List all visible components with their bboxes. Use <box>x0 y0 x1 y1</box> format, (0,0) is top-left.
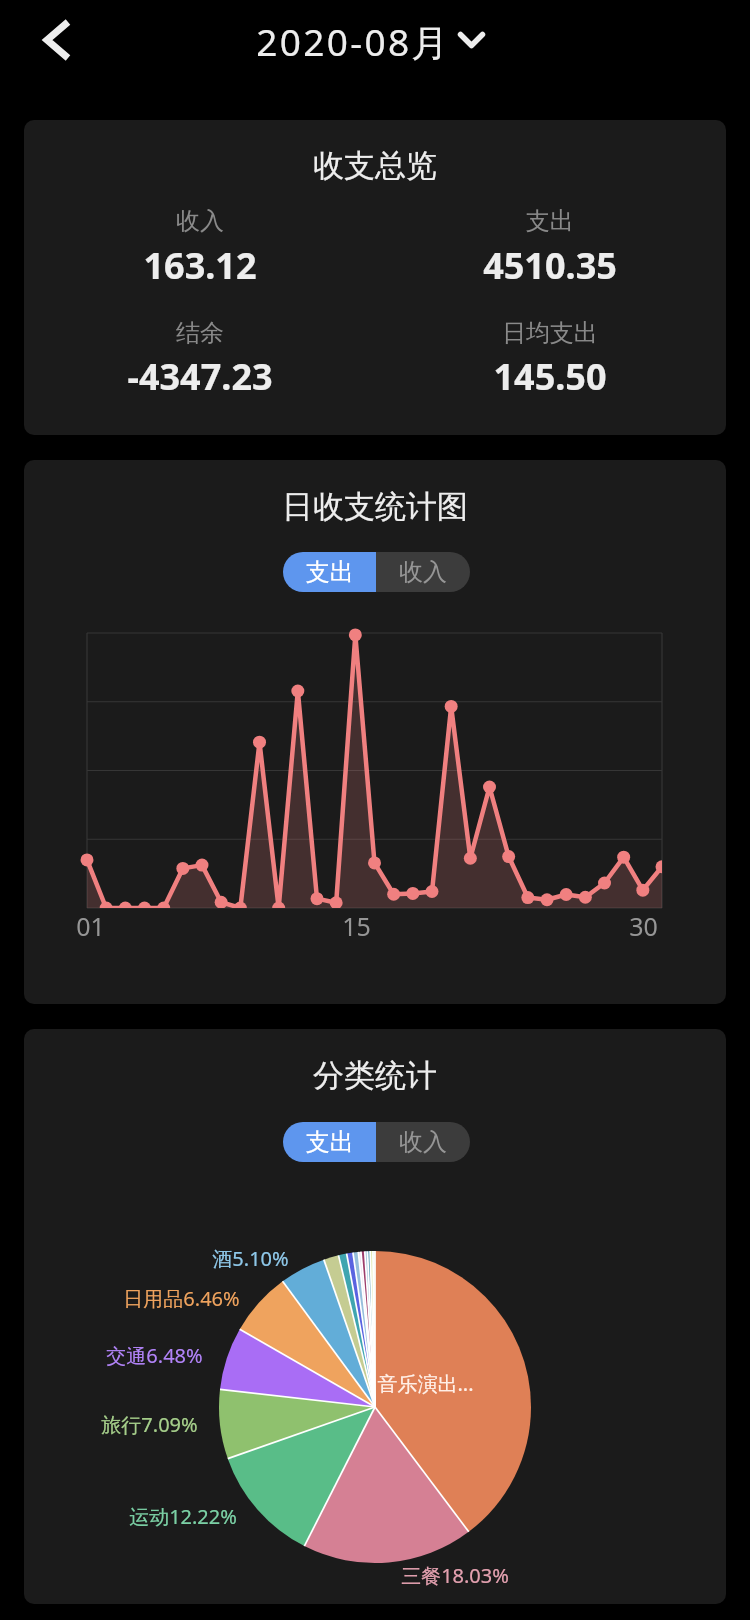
button[interactable]: 收入 <box>376 1122 470 1162</box>
staticText: 163.12 <box>143 241 257 290</box>
staticText: 支出 <box>306 1127 354 1157</box>
staticText: 收入 <box>399 1127 447 1157</box>
staticText: -4347.23 <box>127 352 273 401</box>
staticText: 4510.35 <box>483 241 617 290</box>
staticText: 145.50 <box>493 352 607 401</box>
staticText: 2020-08月 <box>256 16 451 67</box>
button[interactable]: 支出 <box>283 1122 376 1162</box>
staticText: 三餐18.03% <box>401 1562 509 1589</box>
staticText: 01 <box>76 909 105 943</box>
button[interactable]: Back <box>29 12 85 68</box>
staticText: 音乐演出... <box>377 1370 474 1397</box>
staticText: 日收支统计图 <box>282 487 468 526</box>
button[interactable]: 收支总览 <box>24 120 726 435</box>
staticText: 收支总览 <box>313 146 437 185</box>
staticText: 支出 <box>526 206 574 236</box>
staticText: 15 <box>342 909 371 943</box>
staticText: 30 <box>629 909 658 943</box>
staticText: 日用品6.46% <box>123 1285 240 1312</box>
staticText: 运动12.22% <box>129 1503 237 1530</box>
staticText: 酒5.10% <box>212 1245 289 1272</box>
staticText: 日均支出 <box>502 318 598 348</box>
staticText: 分类统计 <box>313 1056 437 1095</box>
staticText: 收入 <box>399 557 447 587</box>
staticText: 交通6.48% <box>106 1342 203 1369</box>
staticText: 收入 <box>176 206 224 236</box>
button[interactable]: Select month <box>452 24 490 56</box>
staticText: 结余 <box>176 318 224 348</box>
staticText: 旅行7.09% <box>101 1411 198 1438</box>
staticText: 支出 <box>306 557 354 587</box>
button[interactable]: 收入 <box>376 552 470 592</box>
button[interactable]: 支出 <box>283 552 376 592</box>
